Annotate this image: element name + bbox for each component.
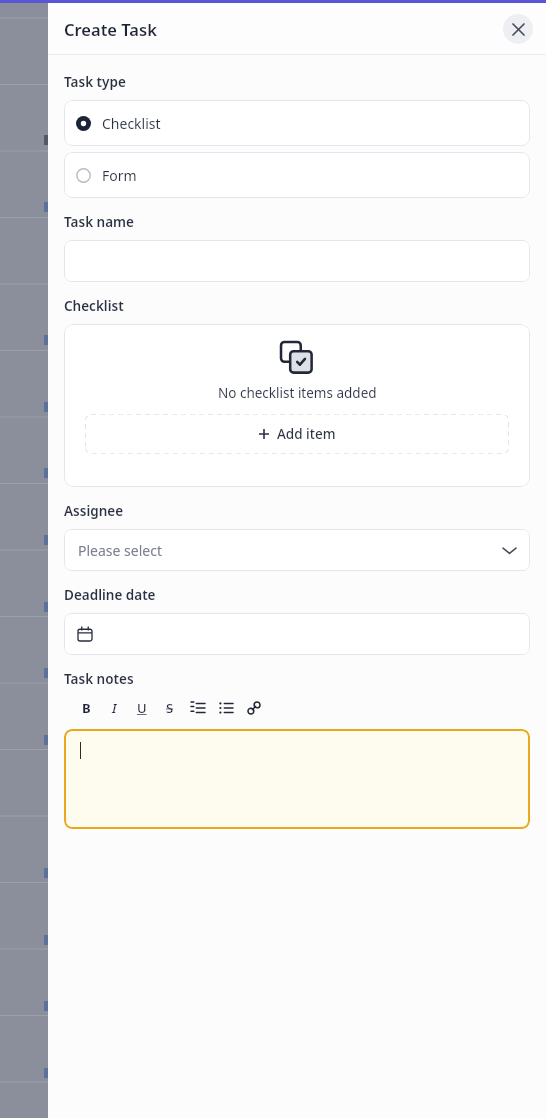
staticText: Create Task bbox=[64, 18, 157, 40]
button[interactable]: Insert link bbox=[240, 695, 268, 721]
staticText: No checklist items added bbox=[218, 384, 377, 402]
staticText: Task type bbox=[64, 73, 126, 91]
button[interactable]: Bold bbox=[72, 695, 100, 721]
button[interactable]: Numbered list bbox=[184, 695, 212, 721]
staticText: U bbox=[137, 699, 147, 717]
staticText: Checklist bbox=[102, 114, 161, 133]
button[interactable]: Pick deadline date bbox=[64, 613, 530, 655]
button[interactable]: Bulleted list bbox=[212, 695, 240, 721]
staticText: Form bbox=[102, 166, 137, 185]
button[interactable]: Italic bbox=[100, 695, 128, 721]
staticText: Task name bbox=[64, 213, 134, 231]
button[interactable]: Add item bbox=[85, 414, 509, 454]
staticText: I bbox=[112, 699, 117, 717]
button[interactable] bbox=[64, 240, 530, 282]
button[interactable]: Underline bbox=[128, 695, 156, 721]
staticText: S bbox=[166, 699, 174, 717]
button[interactable]: Form bbox=[64, 152, 530, 198]
staticText: Deadline date bbox=[64, 586, 156, 604]
button[interactable]: Please select bbox=[64, 529, 530, 571]
staticText: Please select bbox=[78, 541, 162, 560]
button[interactable]: Close bbox=[503, 14, 533, 44]
button[interactable]: Checklist bbox=[64, 100, 530, 146]
button[interactable]: Task notes editor bbox=[64, 729, 530, 829]
staticText: Assignee bbox=[64, 502, 124, 520]
staticText: Task notes bbox=[64, 670, 134, 688]
button[interactable]: Strikethrough bbox=[156, 695, 184, 721]
staticText: Checklist bbox=[64, 297, 124, 315]
staticText: B bbox=[82, 699, 91, 717]
staticText: Add item bbox=[277, 425, 336, 443]
